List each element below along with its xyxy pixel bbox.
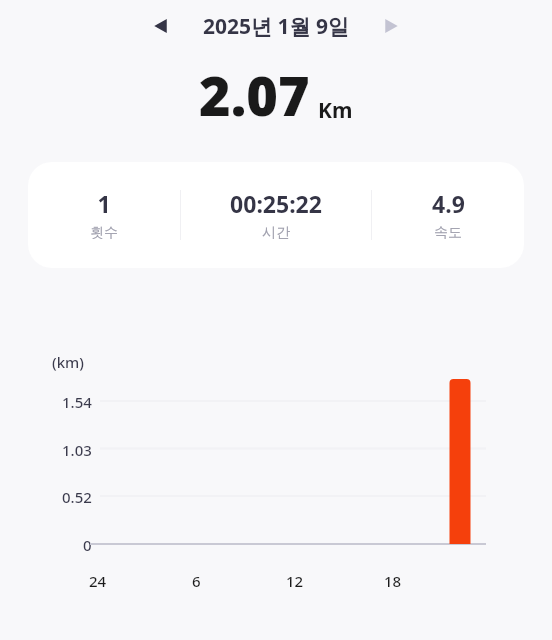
staticText: 시간 bbox=[262, 224, 290, 242]
button[interactable]: Next day bbox=[373, 8, 409, 44]
staticText: 1.03 bbox=[62, 440, 92, 460]
staticText: 00:25:22 bbox=[230, 188, 322, 219]
button[interactable]: Previous day bbox=[143, 8, 179, 44]
button[interactable]: 1 bbox=[28, 188, 180, 242]
staticText: 24 bbox=[89, 571, 107, 591]
staticText: 1 bbox=[97, 188, 111, 219]
staticText: 횟수 bbox=[90, 224, 118, 242]
staticText: 0 bbox=[83, 535, 92, 555]
staticText: 18 bbox=[384, 571, 402, 591]
staticText: 1.54 bbox=[62, 392, 92, 412]
staticText: 4.9 bbox=[432, 188, 465, 219]
staticText: Km bbox=[318, 96, 353, 125]
button[interactable]: 1 bbox=[28, 162, 524, 268]
staticText: 12 bbox=[286, 571, 304, 591]
button[interactable]: 4.9 bbox=[372, 188, 524, 242]
staticText: 2.07 bbox=[199, 58, 310, 132]
staticText: 0.52 bbox=[62, 487, 92, 507]
staticText: (km) bbox=[52, 352, 84, 372]
staticText: 2025년 1월 9일 bbox=[203, 12, 349, 41]
staticText: 6 bbox=[192, 571, 201, 591]
staticText: 속도 bbox=[434, 224, 462, 242]
button[interactable]: 00:25:22 bbox=[181, 188, 371, 242]
